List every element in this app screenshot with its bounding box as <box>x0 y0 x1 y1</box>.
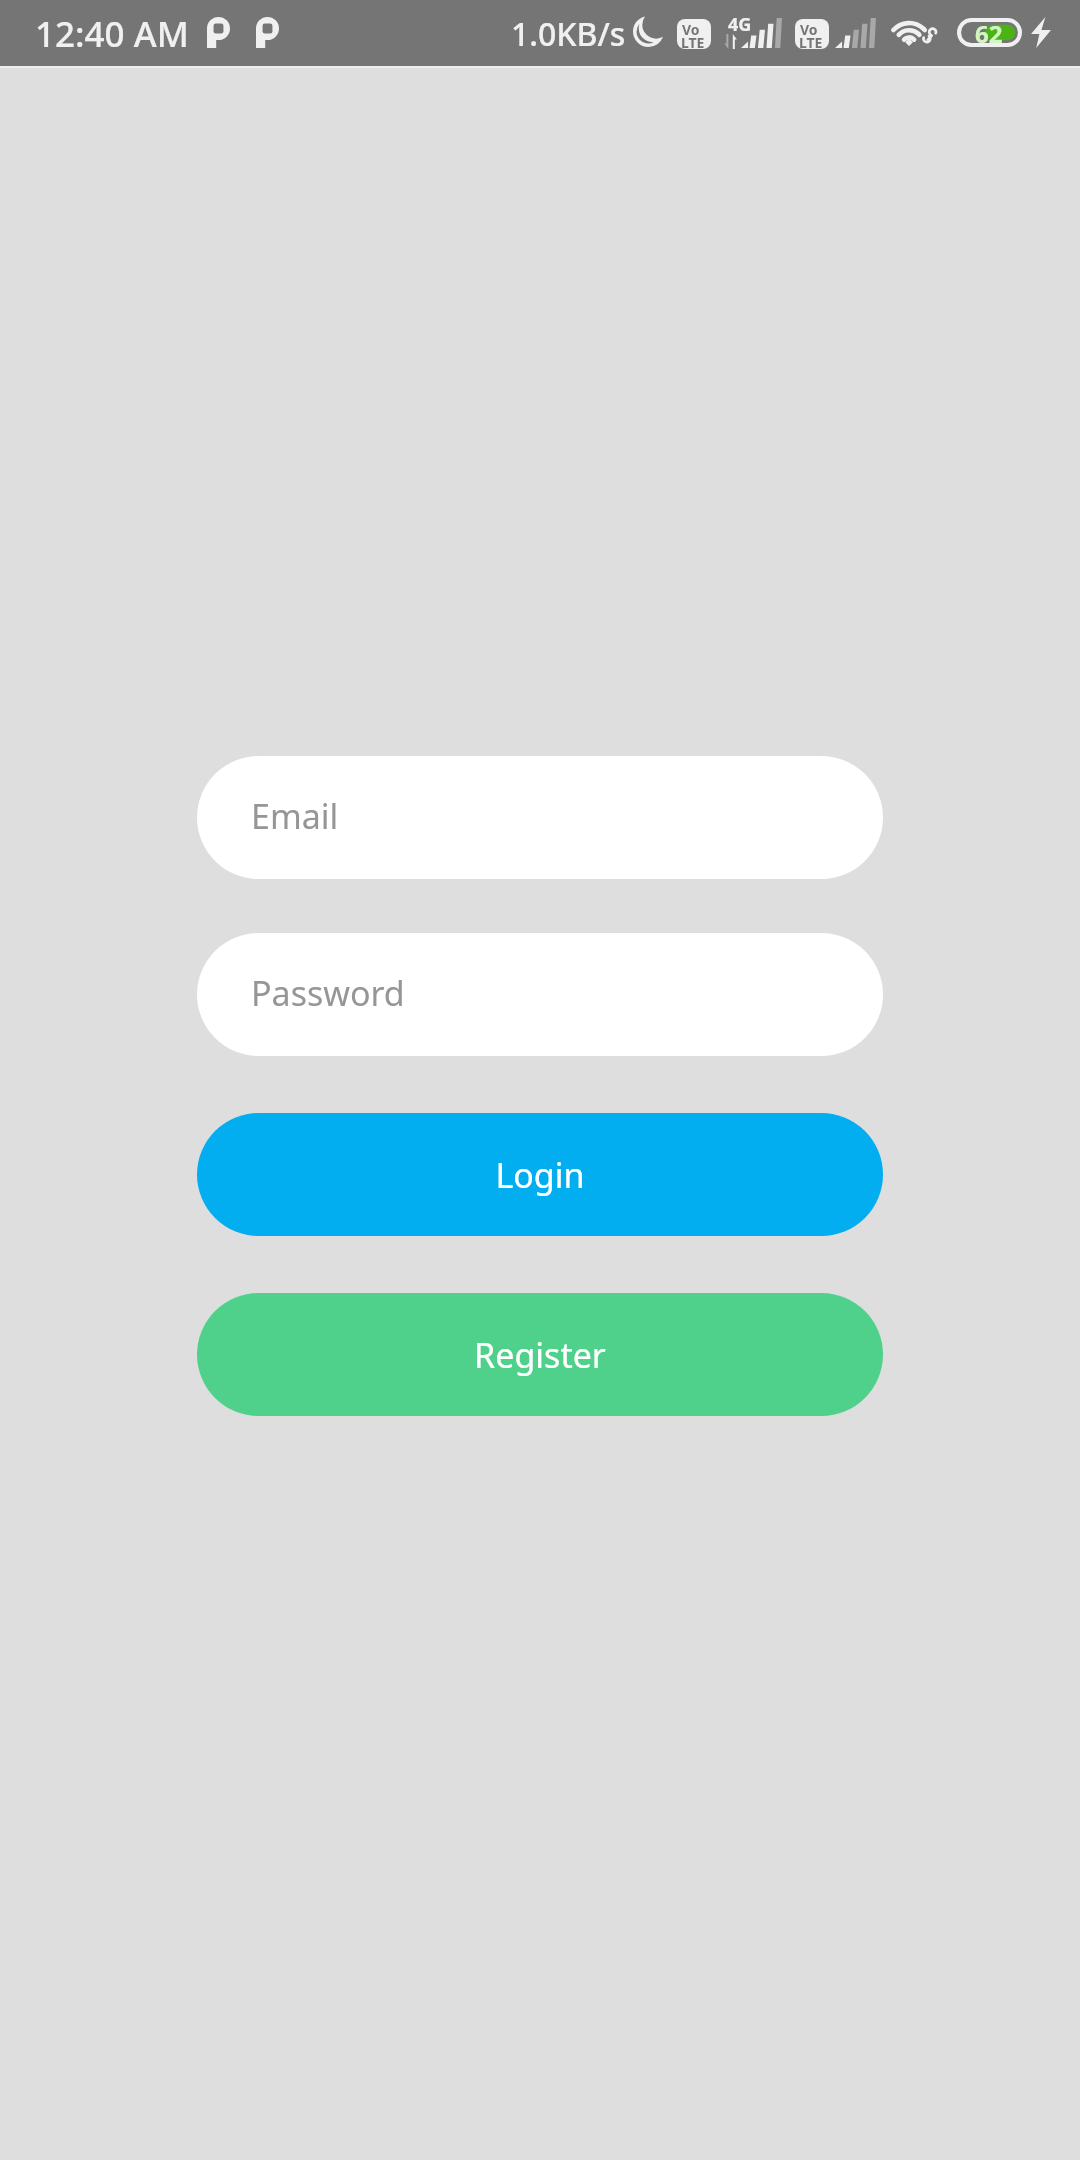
staticText: 12:40 AM <box>35 10 189 58</box>
button[interactable]: Email <box>197 756 883 879</box>
staticText: Register <box>474 1332 606 1378</box>
staticText: Email <box>251 793 339 839</box>
button[interactable]: Register <box>197 1293 883 1416</box>
button[interactable]: Login <box>197 1113 883 1236</box>
staticText: 62 <box>975 17 1003 46</box>
staticText: LTE <box>681 33 705 49</box>
staticText: 4G <box>728 12 752 37</box>
staticText: Vo <box>682 20 700 39</box>
staticText: Vo <box>800 20 818 39</box>
staticText: Password <box>251 970 405 1016</box>
staticText: LTE <box>799 33 823 49</box>
staticText: Login <box>495 1152 585 1198</box>
staticText: 1.0KB/s <box>511 12 626 56</box>
button[interactable]: Password <box>197 933 883 1056</box>
